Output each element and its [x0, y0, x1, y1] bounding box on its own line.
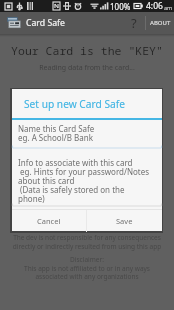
staticText: Info to associate with this card eg. Hin… [18, 157, 150, 205]
button[interactable]: ABOUT [146, 12, 174, 34]
staticText: Disclaimer: This app is not affiliated t… [0, 255, 174, 281]
staticText: am [164, 4, 173, 11]
staticText: ABOUT [150, 19, 171, 27]
button[interactable]: Info to associate with this card eg. Hin… [12, 149, 162, 207]
button[interactable]: Save [87, 210, 162, 232]
staticText: 4:06 [146, 0, 163, 12]
staticText: Your Card is the "KEY" [0, 43, 174, 59]
button[interactable]: Name this Card Safe eg. A School/B Bank [12, 120, 162, 149]
staticText: 100% [110, 1, 131, 12]
staticText: Save [116, 216, 133, 226]
staticText: ? [131, 14, 137, 32]
staticText: The dev is not responsible for any conse… [0, 233, 174, 251]
staticText: Cancel [37, 216, 61, 226]
button[interactable]: Help [126, 12, 145, 34]
button[interactable]: Card Safe app icon [7, 17, 21, 29]
staticText: Name this Card Safe eg. A School/B Bank [18, 123, 95, 144]
staticText: Card Safe [26, 17, 65, 29]
button[interactable]: Cancel [12, 210, 86, 232]
staticText: Reading data from the card... [0, 63, 174, 73]
staticText: Set up new Card Safe [24, 97, 125, 111]
